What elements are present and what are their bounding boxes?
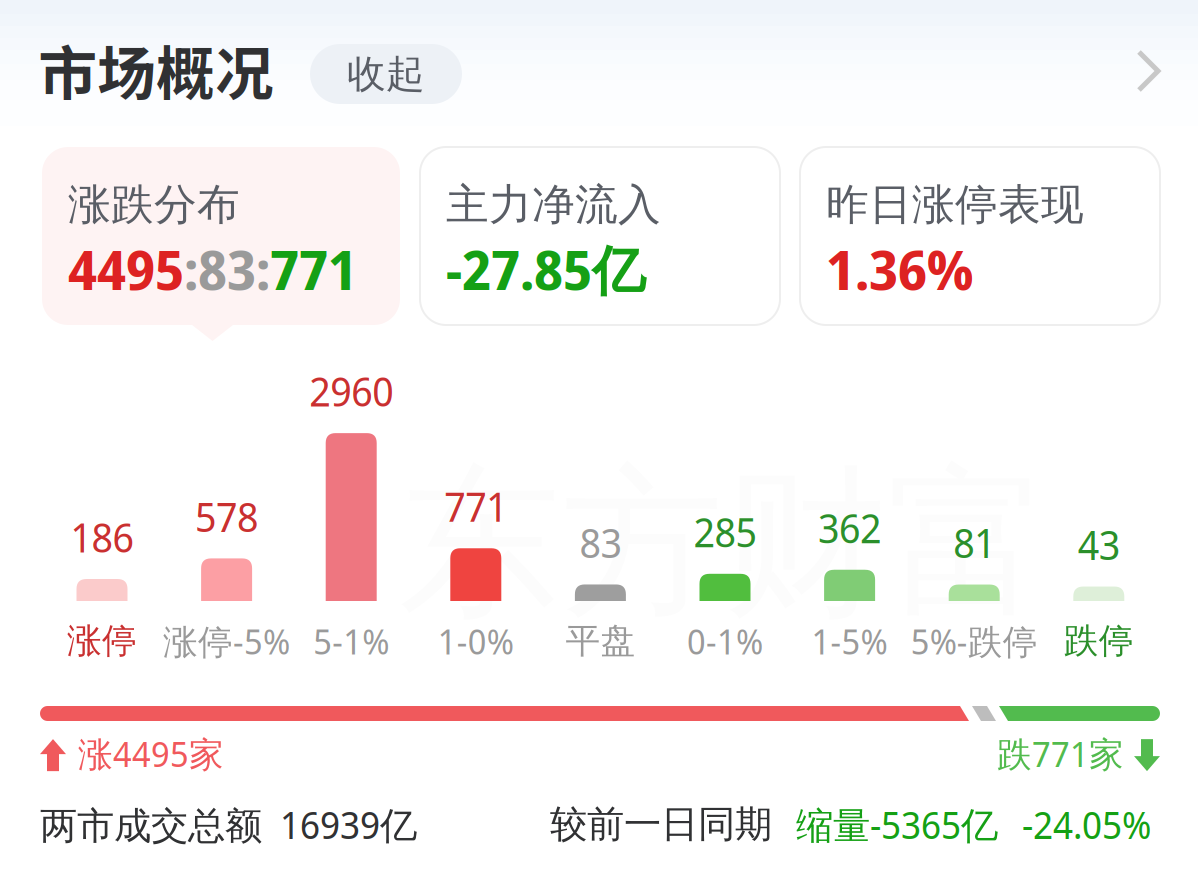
staticText: 涨跌分布	[68, 178, 240, 232]
staticText: 1-5%	[812, 617, 888, 665]
staticText: 43	[1078, 517, 1120, 572]
staticText: 涨停-5%	[163, 617, 290, 665]
staticText: 5-1%	[313, 617, 389, 665]
staticText: 1.36%	[826, 233, 973, 306]
button[interactable]: 涨跌分布	[42, 147, 400, 344]
staticText: 285	[693, 505, 756, 559]
staticText: 83	[579, 515, 621, 570]
staticText: 4495	[68, 233, 184, 306]
staticText: 昨日涨停表现	[826, 178, 1084, 232]
staticText: 跌停	[1064, 619, 1134, 663]
staticText: 收起	[347, 50, 425, 98]
staticText: 涨停	[67, 619, 137, 663]
staticText: 186	[70, 510, 133, 564]
staticText: :	[184, 233, 198, 306]
button[interactable]: 主力净流入	[420, 147, 780, 325]
button[interactable]: 收起	[310, 44, 462, 104]
staticText: 0-1%	[687, 617, 763, 665]
staticText: 362	[818, 500, 881, 555]
staticText: 578	[195, 489, 258, 544]
staticText: 1-0%	[438, 617, 514, 665]
staticText: 涨4495家	[78, 730, 224, 777]
staticText: 771	[444, 479, 507, 533]
staticText: :	[256, 233, 270, 306]
staticText: 较前一日同期	[550, 801, 772, 848]
button[interactable]: 展开详情	[1134, 47, 1164, 95]
staticText: 2960	[309, 364, 393, 418]
staticText: 主力净流入	[446, 178, 661, 232]
staticText: 771	[270, 233, 357, 306]
staticText: 5%-跌停	[911, 617, 1038, 665]
staticText: 东方财富	[398, 442, 1050, 647]
staticText: 平盘	[565, 619, 635, 663]
staticText: -27.85亿	[446, 233, 645, 306]
staticText: 市场概况	[38, 27, 274, 112]
staticText: 81	[953, 515, 995, 570]
staticText: 两市成交总额 16939亿	[40, 799, 417, 850]
staticText: -24.05%	[1022, 799, 1151, 850]
button[interactable]: 昨日涨停表现	[800, 147, 1160, 325]
staticText: 83	[198, 233, 256, 306]
staticText: 缩量-5365亿	[796, 799, 998, 850]
staticText: 跌771家	[997, 730, 1124, 777]
